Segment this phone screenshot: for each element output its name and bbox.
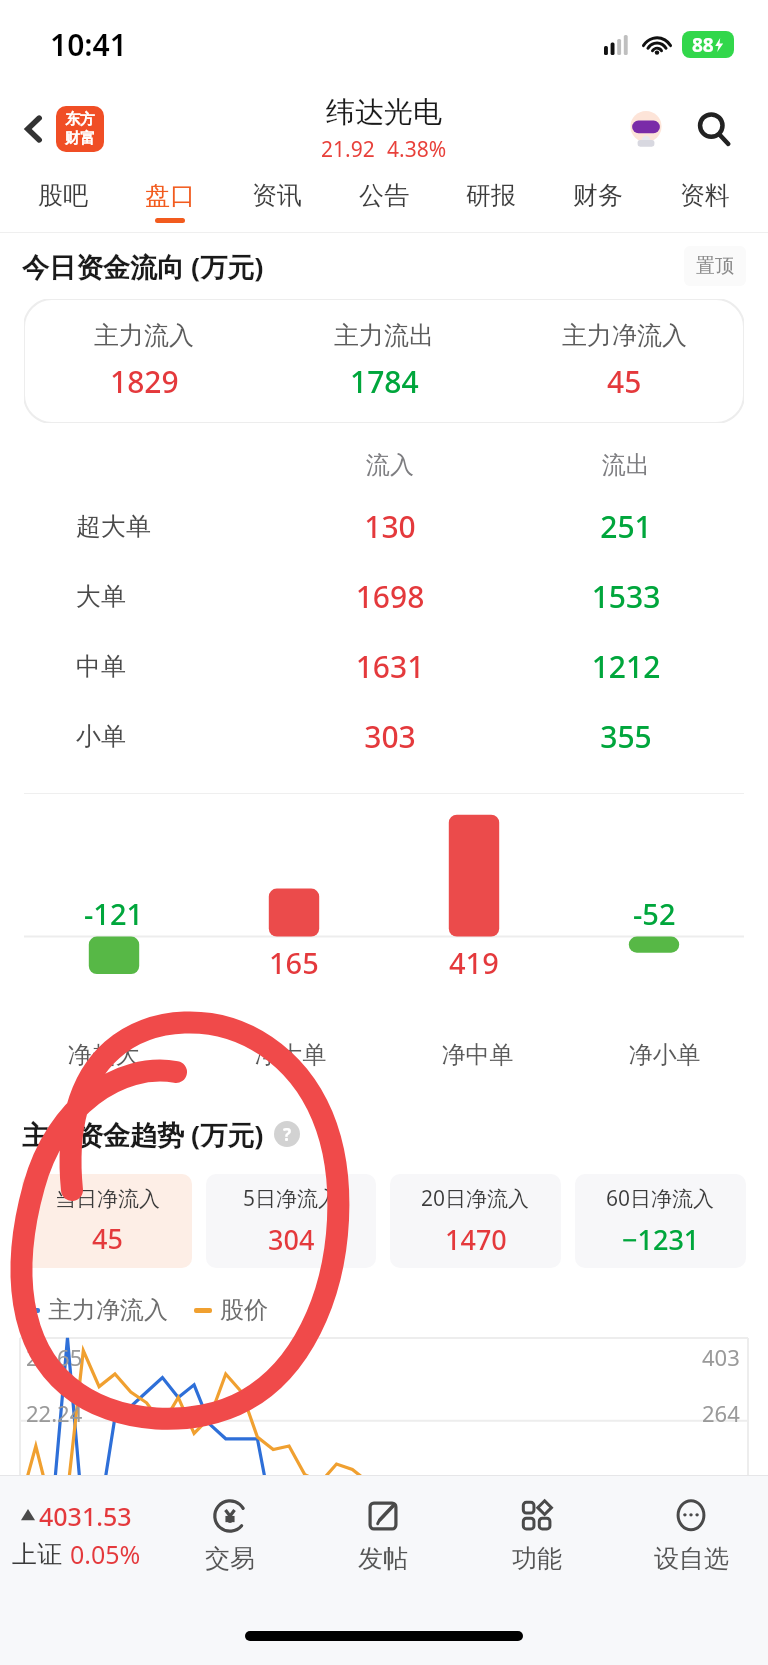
staticText: 股价 [220,1295,268,1325]
staticText: 20日净流入 [421,1184,530,1213]
staticText: 资讯 [252,180,302,211]
button[interactable]: 主力流出 [264,299,504,423]
staticText: 251 [508,506,744,547]
button[interactable]: 交易 [153,1476,306,1594]
button[interactable]: 中单 [24,631,744,701]
staticText: 超大单 [76,511,151,542]
staticText: 304 [268,1221,315,1258]
staticText: 设自选 [654,1543,729,1574]
staticText: 10:41 [50,24,127,65]
staticText: 净中单 [384,1040,571,1070]
button[interactable]: 资讯 [223,170,330,232]
staticText: 净超大 [10,1040,197,1070]
staticText: -121 [84,894,144,933]
staticText: 财富 [65,129,95,148]
staticText: 流出 [508,450,744,480]
staticText: 流入 [272,450,508,480]
staticText: 130 [272,506,508,547]
button[interactable]: 资料 [651,170,758,232]
button[interactable]: 主力净流入 [504,299,744,423]
staticText: 今日资金流向 (万元) [22,248,264,285]
button[interactable]: Back [8,103,60,155]
button[interactable]: 60日净流入 [575,1174,746,1268]
staticText: 88 [692,32,714,58]
button[interactable]: 公告 [330,170,437,232]
staticText: 主力流入 [94,320,194,351]
button[interactable]: 发帖 [306,1476,460,1594]
staticText: 419 [449,943,499,982]
button[interactable]: Search [686,101,742,157]
button[interactable]: 盘口 [116,170,223,232]
staticText: ? [283,1123,292,1146]
staticText: 355 [508,716,744,757]
staticText: 22.65 [26,1342,83,1372]
staticText: 1829 [110,361,179,402]
staticText: 303 [272,716,508,757]
staticText: 4031.53 [39,1499,132,1533]
button[interactable]: 大单 [24,561,744,631]
staticText: 功能 [512,1543,562,1574]
staticText: 财务 [573,180,623,211]
button[interactable]: Help [274,1121,300,1147]
staticText: 净大单 [197,1040,384,1070]
staticText: 1212 [508,646,744,687]
staticText: 主力资金趋势 (万元) [22,1116,264,1153]
staticText: 置顶 [696,254,734,278]
staticText: 主力净流入 [562,320,687,351]
staticText: 纬达光电 [326,94,442,131]
staticText: 1533 [508,576,744,617]
staticText: 1470 [445,1221,507,1258]
staticText: 资料 [680,180,730,211]
staticText: 主力净流入 [48,1295,168,1325]
staticText: 上证 [12,1539,62,1570]
staticText: 45 [607,361,642,402]
staticText: 60日净流入 [606,1184,715,1213]
button[interactable]: 股吧 [10,170,116,232]
staticText: 净小单 [571,1040,758,1070]
button[interactable]: 东方财富 [56,106,104,152]
button[interactable]: 20日净流入 [390,1174,561,1268]
staticText: -52 [633,894,676,933]
staticText: 大单 [76,581,126,612]
button[interactable]: 设自选 [614,1476,768,1594]
staticText: 小单 [76,721,126,752]
staticText: 0.05% [70,1537,141,1571]
staticText: 22.24 [26,1398,83,1428]
staticText: 股吧 [38,180,88,211]
staticText: 当日净流入 [55,1186,160,1212]
staticText: 主力流出 [334,320,434,351]
staticText: 5日净流入 [243,1184,340,1213]
staticText: 1631 [272,646,508,687]
button[interactable]: 小单 [24,701,744,771]
button[interactable]: 功能 [460,1476,614,1594]
button[interactable]: 研报 [437,170,544,232]
button[interactable]: 当日净流入 [22,1174,192,1268]
staticText: 45 [92,1220,123,1257]
staticText: 1784 [350,361,419,402]
staticText: 21.92 [321,135,375,164]
staticText: 盘口 [145,180,195,211]
staticText: 165 [269,943,319,982]
button[interactable]: AI assistant [620,103,672,155]
button[interactable]: 4031.53 [0,1476,153,1594]
staticText: 4.38% [387,135,447,164]
staticText: 中单 [76,651,126,682]
staticText: 发帖 [358,1543,408,1574]
button[interactable]: 财务 [544,170,651,232]
button[interactable]: 超大单 [24,491,744,561]
staticText: 公告 [359,180,409,211]
staticText: 1698 [272,576,508,617]
staticText: 264 [702,1398,740,1428]
staticText: 交易 [205,1543,255,1574]
staticText: 东方 [65,110,95,129]
staticText: 403 [702,1342,740,1372]
button[interactable]: 主力流入 [24,299,264,423]
button[interactable]: 置顶 [684,246,746,286]
staticText: 研报 [466,180,516,211]
staticText: −1231 [622,1221,700,1258]
button[interactable]: 5日净流入 [206,1174,376,1268]
